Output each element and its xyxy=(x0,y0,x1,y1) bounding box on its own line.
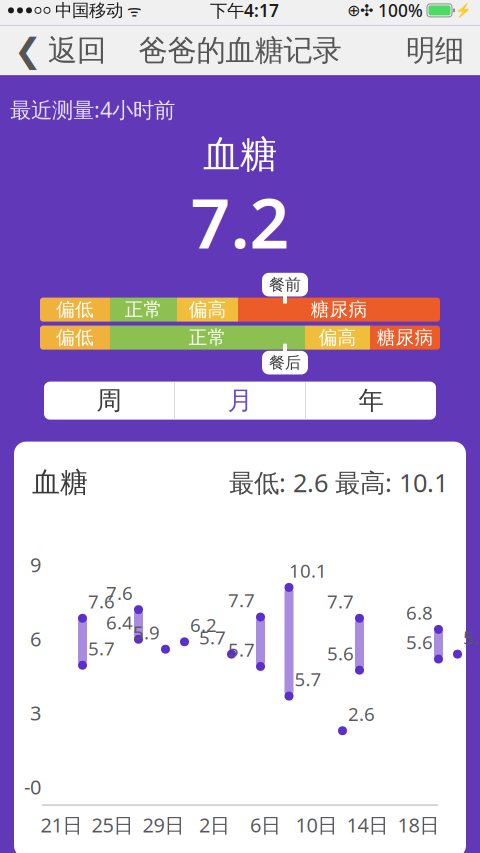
staticText: 5.7 xyxy=(199,625,226,650)
staticText: 5.7 xyxy=(463,625,480,650)
staticText: 5.7 xyxy=(88,636,115,661)
staticText: 糖尿病 xyxy=(310,298,367,321)
staticText: 餐后 xyxy=(269,353,301,372)
staticText: 血糖 xyxy=(32,465,88,500)
staticText: 月 xyxy=(227,385,252,416)
staticText: 6 xyxy=(30,625,41,652)
button[interactable]: 明细 xyxy=(390,25,480,75)
staticText: 21日 xyxy=(40,811,82,838)
staticText: 6日 xyxy=(250,811,281,838)
button[interactable]: 月 xyxy=(175,382,305,420)
staticText: 29日 xyxy=(142,811,184,838)
staticText: 2日 xyxy=(199,811,230,838)
staticText: 5.6 xyxy=(406,630,433,654)
staticText: 7.2 xyxy=(190,176,289,268)
staticText: 中国移动 xyxy=(50,0,123,21)
staticText: 偏高 xyxy=(318,326,356,349)
staticText: 5.9 xyxy=(133,620,160,645)
staticText: 3 xyxy=(30,699,41,726)
staticText: 糖尿病 xyxy=(376,326,433,349)
staticText: 7.7 xyxy=(327,589,354,614)
staticText: ⚡ xyxy=(455,3,472,18)
staticText: 2.6 xyxy=(348,701,375,726)
staticText: 正常 xyxy=(188,326,226,349)
staticText: 返回 xyxy=(48,32,106,68)
staticText: 6.2 xyxy=(190,612,217,637)
staticText: 爸爸的血糖记录 xyxy=(138,32,341,68)
staticText: ✣ xyxy=(360,1,373,19)
staticText: 18日 xyxy=(397,811,439,838)
staticText: 血糖 xyxy=(203,132,277,178)
staticText: 年 xyxy=(358,385,383,416)
staticText: 餐前 xyxy=(269,275,301,294)
staticText: 5.7 xyxy=(294,667,321,691)
button[interactable]: ❮ xyxy=(0,25,120,75)
staticText: -0 xyxy=(24,773,41,800)
staticText: 10.1 xyxy=(289,558,327,583)
staticText: 7.7 xyxy=(228,588,255,612)
staticText: 100% xyxy=(373,0,423,22)
staticText: 7.6 xyxy=(88,589,115,614)
staticText: 正常 xyxy=(124,298,162,321)
staticText: 9 xyxy=(30,551,41,578)
staticText: 25日 xyxy=(91,811,133,838)
staticText: 偏低 xyxy=(56,326,94,349)
staticText: 7.6 xyxy=(106,580,133,605)
staticText: 5.6 xyxy=(327,641,354,666)
staticText: 6.8 xyxy=(406,600,433,625)
button[interactable]: 周 xyxy=(44,382,174,420)
staticText: 5.7 xyxy=(228,637,255,662)
staticText: 偏低 xyxy=(56,298,94,321)
staticText: 14日 xyxy=(346,811,388,838)
staticText: 6.4 xyxy=(106,610,133,635)
button[interactable]: 年 xyxy=(306,382,436,420)
staticText: 10日 xyxy=(295,811,337,838)
staticText: ᯤ xyxy=(123,0,142,21)
staticText: 周 xyxy=(96,385,121,416)
staticText: 最低: 2.6 最高: 10.1 xyxy=(229,465,448,499)
staticText: 下午4:17 xyxy=(210,0,279,22)
staticText: 最近测量:4小时前 xyxy=(10,95,175,124)
staticText: ⊕ xyxy=(347,1,360,19)
staticText: 明细 xyxy=(406,32,464,68)
staticText: ❮ xyxy=(14,31,42,69)
staticText: 偏高 xyxy=(188,298,226,321)
